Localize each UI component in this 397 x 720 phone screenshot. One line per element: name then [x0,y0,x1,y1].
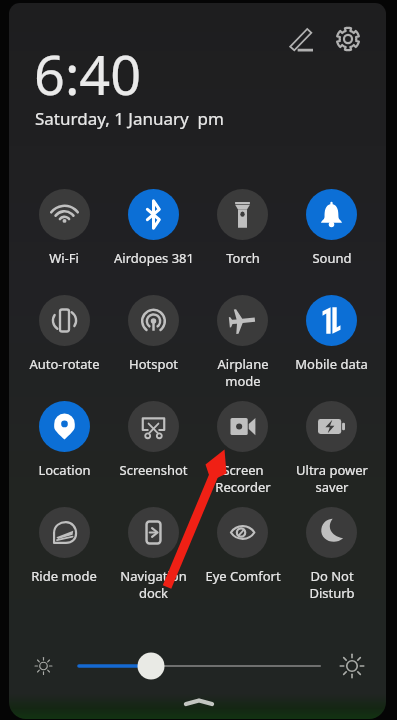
button[interactable]: Ride mode [19,507,109,613]
staticText: Do Not Disturb [309,567,355,602]
button[interactable]: Navigation dock [109,507,198,613]
button[interactable]: Auto-rotate [19,295,109,401]
button[interactable]: Torch [198,189,287,295]
button[interactable]: Location [19,401,109,507]
button[interactable]: Hotspot [109,295,198,401]
staticText: Saturday, 1 January pm [35,107,224,130]
staticText: Eye Comfort [205,567,281,585]
button[interactable]: Airplane mode [198,295,287,401]
staticText: Airdopes 381 [114,249,194,267]
button[interactable]: Brightness slider [69,651,329,681]
staticText: Hotspot [129,355,178,373]
staticText: Torch [226,249,260,267]
button[interactable]: Expand [177,689,221,711]
staticText: Navigation dock [120,567,187,602]
staticText: Airplane mode [217,355,269,390]
staticText: Sound [312,249,352,267]
staticText: Ultra power saver [296,461,368,496]
button[interactable]: Screen Recorder [198,401,287,507]
button[interactable]: Edit [283,21,319,57]
staticText: 6:40 [34,37,142,111]
staticText: Screen Recorder [215,461,271,496]
staticText: Location [38,461,91,479]
button[interactable]: Decrease brightness [31,645,73,687]
staticText: Auto-rotate [29,355,100,373]
button[interactable]: Airdopes 381 [109,189,198,295]
staticText: Screenshot [119,461,188,479]
button[interactable]: Sound [287,189,376,295]
staticText: Mobile data [295,355,368,373]
button[interactable]: Ultra power saver [287,401,376,507]
button[interactable]: Wi-Fi [19,189,109,295]
button[interactable]: Increase brightness [339,644,383,688]
button[interactable]: Do Not Disturb [287,507,376,613]
button[interactable]: Eye Comfort [198,507,287,613]
button[interactable]: Settings [330,21,366,57]
staticText: Wi-Fi [49,249,79,267]
button[interactable]: Mobile data [287,295,376,401]
button[interactable]: Screenshot [109,401,198,507]
staticText: Ride mode [31,567,97,585]
